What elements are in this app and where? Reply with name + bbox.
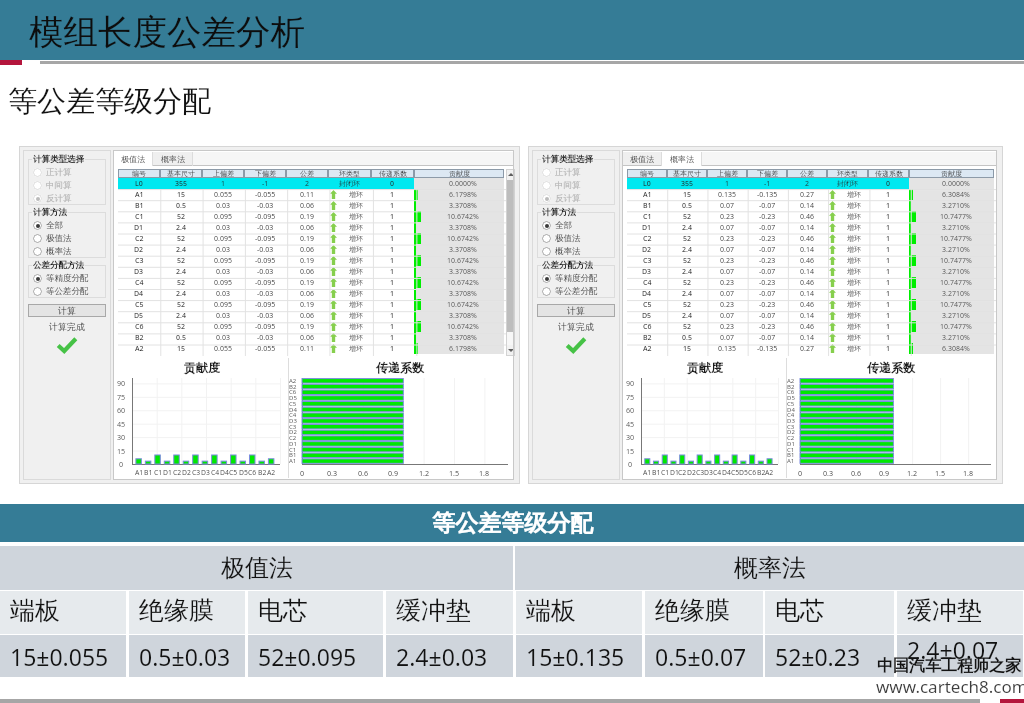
button[interactable]: 绝缘膜 [645,591,763,634]
button[interactable]: B1 [118,200,504,211]
button[interactable]: C4 [627,277,994,288]
staticText: 2.4 [682,245,692,255]
staticText: 52 [683,256,692,266]
button[interactable]: C4 [118,277,504,288]
staticText: 计算类型选择 [33,154,84,165]
button[interactable]: 概率法 [542,245,620,258]
button[interactable]: 计算 [537,304,615,317]
button[interactable]: D4 [118,288,504,299]
button[interactable]: 极值法 [33,232,111,245]
button[interactable]: 概率法 [662,152,702,166]
button[interactable]: 概率法 [33,245,111,258]
button[interactable]: 52±0.095 [248,635,383,677]
button[interactable]: D3 [627,266,994,277]
staticText: C1 [135,212,144,222]
staticText: D4 [134,289,144,299]
button[interactable]: D2 [627,244,994,255]
button[interactable]: 15±0.135 [516,635,642,677]
button[interactable]: 等精度分配 [542,272,620,285]
button[interactable]: 电芯 [765,591,894,634]
button[interactable]: D5 [627,310,994,321]
staticText: L0 [643,179,651,189]
button[interactable]: D4 [627,288,994,299]
staticText: C4 [211,468,220,477]
button[interactable]: 全部 [33,219,111,232]
button[interactable]: C5 [627,299,994,310]
button[interactable]: 端板 [0,591,126,634]
button[interactable]: 极值法 [622,152,662,166]
button[interactable]: 概率法 [153,152,193,166]
button[interactable]: D1 [118,222,504,233]
button[interactable]: Scroll down [506,345,515,356]
staticText: 公差 [800,169,814,178]
button[interactable]: Scroll up [506,169,515,180]
button[interactable]: 正计算 [33,166,111,179]
staticText: 45 [626,419,635,429]
button[interactable]: D2 [118,244,504,255]
button[interactable]: B1 [627,200,994,211]
button[interactable]: 极值法 [542,232,620,245]
button[interactable]: C3 [627,255,994,266]
button[interactable]: A1 [627,189,994,200]
button[interactable]: 计算 [28,304,106,317]
button[interactable]: C2 [118,233,504,244]
button[interactable]: 52±0.23 [765,635,894,677]
button[interactable]: 端板 [516,591,642,634]
button[interactable]: 等公差分配 [33,285,111,298]
button[interactable]: C1 [627,211,994,222]
button[interactable]: 缓冲垫 [897,591,1023,634]
button[interactable]: C3 [118,255,504,266]
button[interactable]: 电芯 [248,591,383,634]
button[interactable]: 缓冲垫 [386,591,513,634]
button[interactable]: 极值法 [0,546,513,590]
staticText: D2 [134,245,144,255]
button[interactable]: 极值法 [113,152,153,166]
button[interactable]: D1 [627,222,994,233]
button[interactable]: 等公差分配 [542,285,620,298]
button[interactable]: 2.4±0.07 [897,635,1023,677]
button[interactable]: 0.5±0.03 [129,635,245,677]
staticText: 0.23 [720,278,734,288]
staticText: 0.46 [800,322,814,332]
staticText: 0.06 [300,333,314,343]
button[interactable]: 反计算 [542,192,620,205]
button[interactable]: 0.5±0.07 [645,635,763,677]
button[interactable]: 反计算 [33,192,111,205]
button[interactable]: B2 [118,332,504,343]
staticText: 增环 [847,234,861,243]
staticText: 增环 [847,300,861,309]
button[interactable]: 15±0.055 [0,635,126,677]
staticText: 0.07 [720,201,734,211]
button[interactable]: 中间算 [542,179,620,192]
button[interactable]: C6 [627,321,994,332]
button[interactable]: C2 [627,233,994,244]
button[interactable]: C5 [118,299,504,310]
staticText: D1 [289,440,297,448]
button[interactable]: L0 [118,178,504,189]
staticText: 增环 [349,256,363,265]
staticText: 355 [681,179,694,189]
button[interactable]: 中间算 [33,179,111,192]
staticText: 概率法 [670,154,694,164]
button[interactable]: 2.4±0.03 [386,635,513,677]
button[interactable]: A2 [627,343,994,354]
staticText: 1 [886,190,891,200]
button[interactable]: 等精度分配 [33,272,111,285]
button[interactable]: 概率法 [515,546,1024,590]
staticText: C3 [696,468,705,477]
button[interactable]: C1 [118,211,504,222]
button[interactable]: L0 [627,178,994,189]
staticText: 0.6 [851,468,862,478]
button[interactable]: A1 [118,189,504,200]
button[interactable]: D3 [118,266,504,277]
button[interactable]: B2 [627,332,994,343]
staticText: 0.06 [300,223,314,233]
button[interactable]: C6 [118,321,504,332]
button[interactable]: 正计算 [542,166,620,179]
button[interactable]: 绝缘膜 [129,591,245,634]
button[interactable]: D5 [118,310,504,321]
button[interactable]: 全部 [542,219,620,232]
button[interactable]: A2 [118,343,504,354]
button[interactable]: Scroll [506,180,515,332]
staticText: 0.27 [800,190,814,200]
